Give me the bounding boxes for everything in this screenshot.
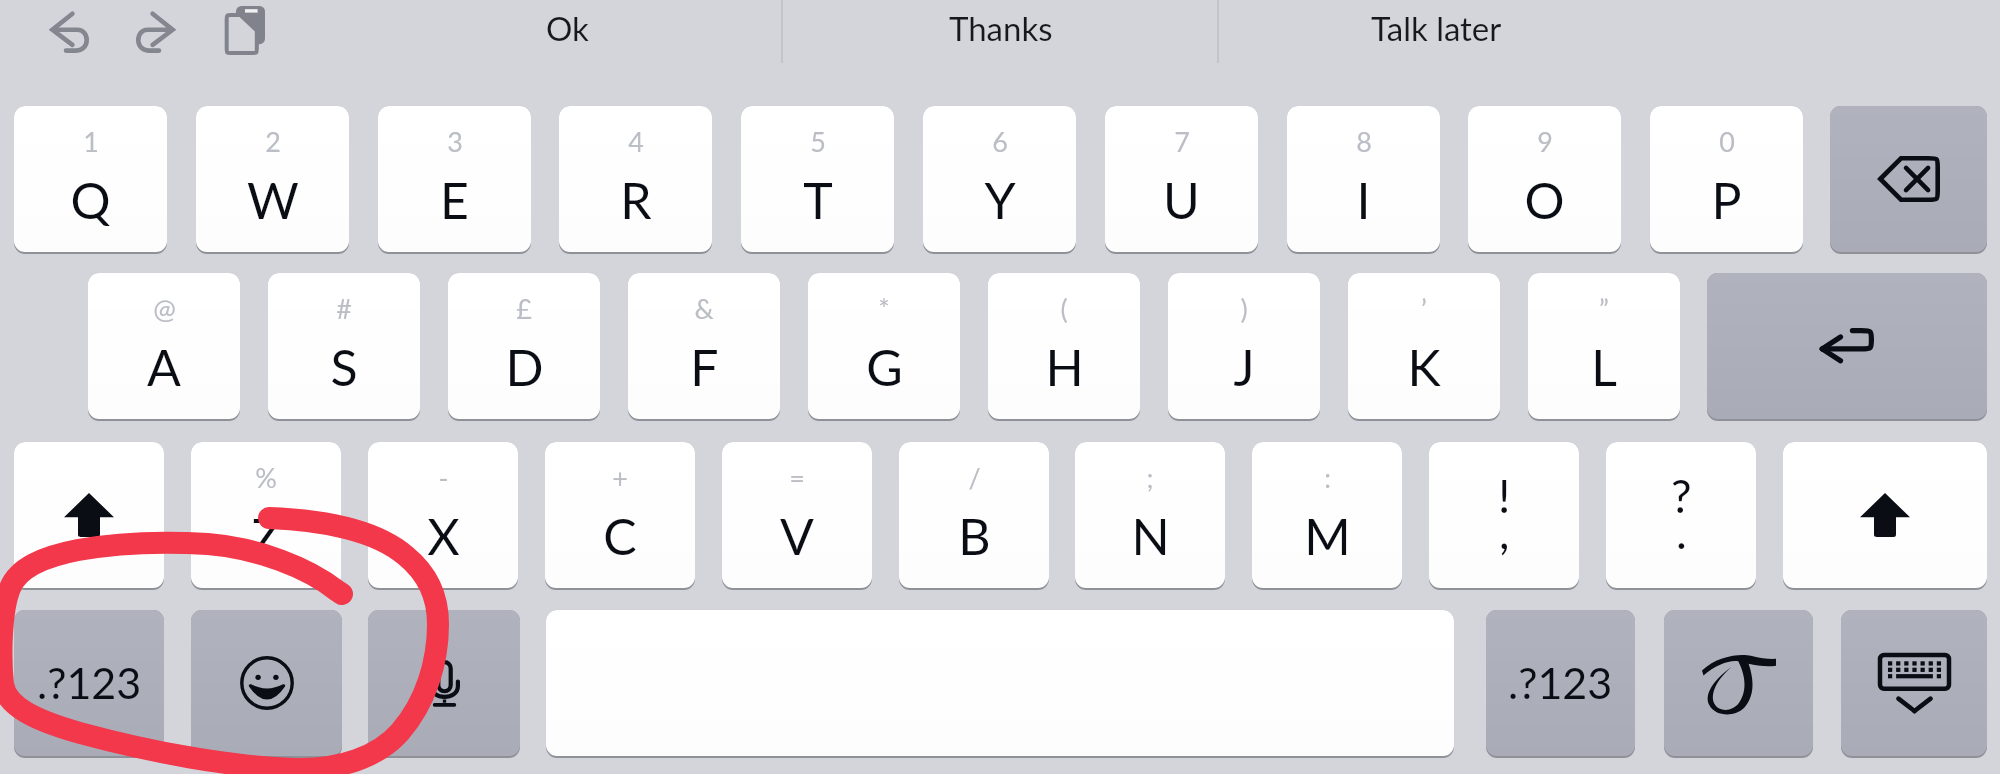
button[interactable]: Shift xyxy=(1783,442,1987,588)
staticText: + xyxy=(612,461,628,493)
staticText: W xyxy=(247,170,299,230)
staticText: L xyxy=(1591,337,1617,397)
button[interactable]: £ xyxy=(448,273,600,419)
button[interactable]: = xyxy=(722,442,872,588)
button[interactable]: % xyxy=(191,442,341,588)
button[interactable]: 8 xyxy=(1287,106,1440,252)
staticText: N xyxy=(1131,506,1170,566)
staticText: D xyxy=(505,337,544,397)
button[interactable]: Hide keyboard xyxy=(1841,610,1987,756)
button[interactable]: ’ xyxy=(1348,273,1500,419)
staticText: # xyxy=(336,292,352,324)
staticText: , xyxy=(1499,504,1510,559)
button[interactable]: ? xyxy=(1606,442,1756,588)
staticText: 2 xyxy=(265,125,281,157)
staticText: G xyxy=(866,337,903,397)
button[interactable]: 6 xyxy=(923,106,1076,252)
staticText: ; xyxy=(1146,461,1154,493)
staticText: F xyxy=(690,337,719,397)
staticText: U xyxy=(1163,170,1200,230)
button[interactable]: - xyxy=(368,442,518,588)
button[interactable]: 5 xyxy=(741,106,894,252)
button[interactable]: ) xyxy=(1168,273,1320,419)
staticText: 3 xyxy=(447,125,463,157)
button[interactable]: ” xyxy=(1528,273,1680,419)
staticText: P xyxy=(1711,170,1742,230)
button[interactable]: Ok xyxy=(349,0,785,59)
button[interactable]: 9 xyxy=(1468,106,1621,252)
staticText: V xyxy=(780,506,814,566)
button[interactable]: Paste xyxy=(217,0,275,60)
button[interactable]: & xyxy=(628,273,780,419)
button[interactable]: 0 xyxy=(1650,106,1803,252)
button[interactable]: : xyxy=(1252,442,1402,588)
button[interactable]: ; xyxy=(1075,442,1225,588)
button[interactable]: Emoji xyxy=(191,610,342,756)
button[interactable]: + xyxy=(545,442,695,588)
button[interactable]: Return xyxy=(1707,273,1987,419)
button[interactable]: 1 xyxy=(14,106,167,252)
staticText: 8 xyxy=(1356,125,1372,157)
button[interactable]: Thanks xyxy=(783,0,1219,59)
button[interactable]: .?123 xyxy=(1486,610,1635,756)
staticText: ” xyxy=(1599,292,1609,324)
button[interactable]: Backspace xyxy=(1830,106,1987,252)
staticText: ( xyxy=(1060,292,1068,324)
staticText: @ xyxy=(153,292,176,324)
staticText: = xyxy=(789,461,805,493)
staticText: Z xyxy=(251,506,282,566)
staticText: 0 xyxy=(1719,125,1735,157)
staticText: .?123 xyxy=(37,657,142,709)
staticText: E xyxy=(440,170,469,230)
staticText: X xyxy=(427,506,460,566)
staticText: Ok xyxy=(546,8,589,48)
staticText: 5 xyxy=(810,125,826,157)
staticText: Thanks xyxy=(949,8,1053,48)
staticText: R xyxy=(620,170,652,230)
staticText: A xyxy=(147,337,181,397)
staticText: ! xyxy=(1498,468,1511,523)
staticText: S xyxy=(330,337,358,397)
button[interactable]: Shift xyxy=(14,442,164,588)
staticText: .?123 xyxy=(1508,657,1613,709)
staticText: ’ xyxy=(1421,292,1427,324)
button[interactable]: Undo xyxy=(42,3,98,61)
staticText: . xyxy=(1676,504,1687,559)
button[interactable]: ( xyxy=(988,273,1140,419)
staticText: T xyxy=(803,170,833,230)
button[interactable]: 3 xyxy=(378,106,531,252)
button[interactable]: @ xyxy=(88,273,240,419)
staticText: I xyxy=(1356,170,1371,230)
staticText: M xyxy=(1304,506,1351,566)
button[interactable]: 7 xyxy=(1105,106,1258,252)
staticText: 9 xyxy=(1537,125,1553,157)
button[interactable]: Handwriting xyxy=(1664,610,1813,756)
staticText: K xyxy=(1407,337,1441,397)
staticText: ? xyxy=(1671,468,1692,523)
staticText: : xyxy=(1324,461,1331,493)
button[interactable]: ! xyxy=(1429,442,1579,588)
staticText: B xyxy=(958,506,991,566)
staticText: C xyxy=(603,506,637,566)
staticText: Y xyxy=(984,170,1016,230)
button[interactable]: # xyxy=(268,273,420,419)
staticText: * xyxy=(878,292,890,324)
staticText: ) xyxy=(1240,292,1248,324)
button[interactable]: 2 xyxy=(196,106,349,252)
button[interactable]: / xyxy=(899,442,1049,588)
staticText: % xyxy=(255,461,277,493)
button[interactable]: Talk later xyxy=(1218,0,1654,59)
staticText: O xyxy=(1524,170,1565,230)
staticText: H xyxy=(1045,337,1084,397)
button[interactable]: Redo xyxy=(127,3,183,61)
staticText: 1 xyxy=(83,125,99,157)
button[interactable]: Dictate xyxy=(368,610,520,756)
button[interactable]: 4 xyxy=(559,106,712,252)
staticText: / xyxy=(968,461,981,493)
button[interactable]: .?123 xyxy=(14,610,164,756)
staticText: 7 xyxy=(1174,125,1190,157)
button[interactable]: * xyxy=(808,273,960,419)
staticText: J xyxy=(1233,337,1255,397)
staticText: 4 xyxy=(628,125,644,157)
